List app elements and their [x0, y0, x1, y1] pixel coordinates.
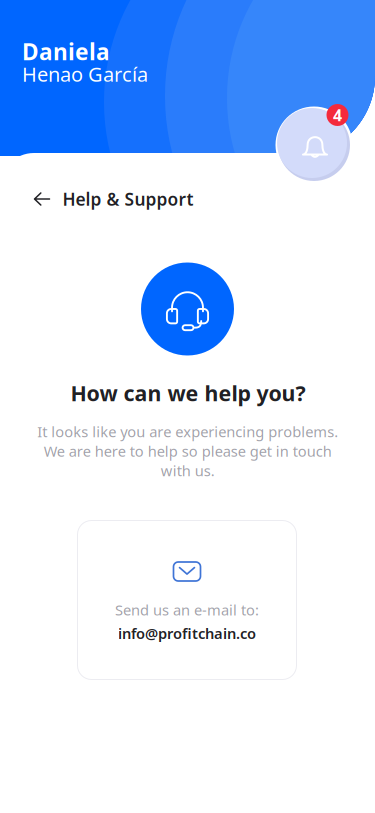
button[interactable]: Send us an e-mail to: [77, 520, 297, 680]
staticText: Send us an e-mail to: [115, 600, 259, 619]
staticText: info@profitchain.co [118, 623, 256, 643]
staticText: How can we help you? [70, 379, 305, 407]
staticText: Help & Support [62, 187, 193, 210]
staticText: It looks like you are experiencing probl… [37, 422, 338, 480]
button[interactable]: Back [24, 183, 59, 215]
staticText: 4 [333, 104, 342, 126]
button[interactable]: Notifications [275, 106, 352, 183]
staticText: Henao García [22, 61, 148, 87]
staticText: Daniela [22, 36, 110, 66]
